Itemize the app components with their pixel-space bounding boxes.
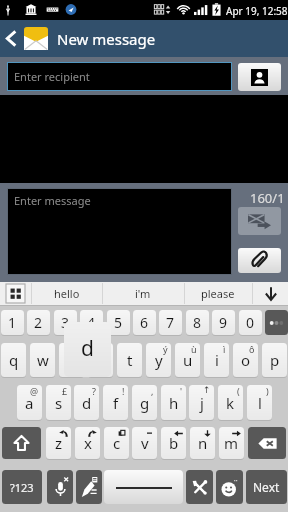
button[interactable]: 9 bbox=[212, 310, 235, 335]
staticText: 8 bbox=[193, 313, 202, 332]
staticText: a bbox=[25, 393, 34, 413]
staticText: Next bbox=[253, 479, 280, 495]
staticText: ) bbox=[266, 385, 269, 397]
staticText: n bbox=[198, 433, 208, 453]
staticText: , bbox=[151, 385, 154, 397]
staticText: 5 bbox=[114, 313, 123, 332]
button[interactable]: Backspace bbox=[248, 427, 286, 459]
staticText: z bbox=[55, 433, 63, 453]
staticText: d bbox=[82, 393, 92, 413]
staticText: j bbox=[200, 393, 204, 413]
button[interactable]: Next bbox=[246, 470, 287, 504]
button[interactable]: Space bbox=[104, 470, 183, 504]
button[interactable]: please bbox=[184, 282, 252, 305]
button[interactable]: m bbox=[219, 427, 244, 459]
staticText: p bbox=[270, 350, 280, 370]
staticText: v bbox=[141, 433, 149, 453]
button[interactable]: e bbox=[59, 343, 84, 377]
button[interactable]: f bbox=[103, 385, 128, 420]
staticText: u bbox=[183, 350, 193, 370]
staticText: o bbox=[241, 350, 251, 370]
staticText: ' bbox=[180, 385, 183, 397]
staticText: ?123 bbox=[10, 480, 34, 495]
button[interactable]: Enter recipient bbox=[8, 63, 231, 90]
staticText: h bbox=[169, 393, 179, 413]
staticText: b bbox=[169, 433, 179, 453]
staticText: ý bbox=[163, 343, 168, 355]
button[interactable]: x bbox=[75, 427, 100, 459]
button[interactable]: 2 bbox=[27, 310, 50, 335]
button[interactable]: 8 bbox=[186, 310, 209, 335]
button[interactable]: More symbols bbox=[265, 310, 288, 335]
button[interactable]: v bbox=[132, 427, 157, 459]
staticText: ( bbox=[237, 385, 240, 397]
button[interactable]: 0 bbox=[239, 310, 262, 335]
staticText: Enter recipient bbox=[14, 69, 90, 84]
button[interactable]: Send message bbox=[238, 207, 281, 235]
button[interactable]: Back bbox=[0, 20, 288, 57]
staticText: ì bbox=[223, 343, 226, 355]
button[interactable]: o bbox=[233, 343, 258, 377]
button[interactable]: c bbox=[104, 427, 129, 459]
staticText: i'm bbox=[135, 286, 151, 301]
button[interactable]: Keyboard settings bbox=[186, 470, 213, 504]
button[interactable]: w bbox=[30, 343, 55, 377]
button[interactable]: n bbox=[190, 427, 215, 459]
staticText: ↑ bbox=[203, 385, 211, 395]
button[interactable]: Choose contact bbox=[238, 63, 281, 91]
button[interactable]: a bbox=[17, 385, 42, 420]
staticText: Enter message bbox=[14, 193, 91, 208]
button[interactable]: 3 bbox=[54, 310, 77, 335]
button[interactable]: q bbox=[1, 343, 26, 377]
button[interactable]: j bbox=[189, 385, 214, 420]
button[interactable]: l bbox=[247, 385, 272, 420]
button[interactable]: Voice input bbox=[47, 470, 73, 504]
button[interactable]: Emoji bbox=[216, 470, 243, 504]
button[interactable]: t bbox=[117, 343, 142, 377]
button[interactable]: Shift bbox=[2, 427, 41, 459]
button[interactable]: 1 bbox=[1, 310, 24, 335]
button[interactable]: b bbox=[161, 427, 186, 459]
staticText: 0 bbox=[246, 313, 255, 332]
staticText: 3 bbox=[61, 313, 70, 332]
staticText: 9 bbox=[219, 313, 228, 332]
staticText: hello bbox=[54, 286, 80, 301]
button[interactable]: g bbox=[132, 385, 157, 420]
button[interactable]: Attach bbox=[238, 248, 281, 273]
button[interactable]: 5 bbox=[107, 310, 130, 335]
staticText: 1 bbox=[8, 313, 17, 332]
button[interactable]: h bbox=[161, 385, 186, 420]
button[interactable]: i bbox=[204, 343, 229, 377]
staticText: 6 bbox=[140, 313, 149, 332]
button[interactable]: u bbox=[175, 343, 200, 377]
button[interactable]: z bbox=[46, 427, 71, 459]
button[interactable]: Input methods bbox=[6, 284, 25, 303]
button[interactable]: d bbox=[74, 385, 99, 420]
staticText: 160/1 bbox=[250, 189, 285, 207]
staticText: l bbox=[258, 393, 262, 413]
staticText: 7 bbox=[166, 313, 175, 332]
button[interactable]: 6 bbox=[133, 310, 156, 335]
button[interactable]: r bbox=[88, 343, 113, 377]
staticText: q bbox=[9, 350, 19, 370]
button[interactable]: Handwriting bbox=[76, 470, 102, 504]
staticText: ù bbox=[191, 343, 197, 355]
button[interactable]: 4 bbox=[80, 310, 103, 335]
button[interactable]: 7 bbox=[159, 310, 182, 335]
button[interactable]: Symbols bbox=[2, 470, 42, 504]
button[interactable]: s bbox=[46, 385, 71, 420]
staticText: 2 bbox=[34, 313, 43, 332]
button[interactable]: p bbox=[262, 343, 287, 377]
staticText: f bbox=[113, 393, 119, 413]
staticText: y bbox=[155, 350, 163, 370]
button[interactable]: Hide keyboard bbox=[253, 282, 288, 305]
button[interactable]: Enter message bbox=[8, 189, 231, 274]
button[interactable]: hello bbox=[31, 282, 102, 305]
button[interactable]: i'm bbox=[102, 282, 184, 305]
staticText: m bbox=[224, 433, 239, 453]
button[interactable]: k bbox=[218, 385, 243, 420]
button[interactable]: y bbox=[146, 343, 171, 377]
staticText: please bbox=[201, 286, 235, 301]
